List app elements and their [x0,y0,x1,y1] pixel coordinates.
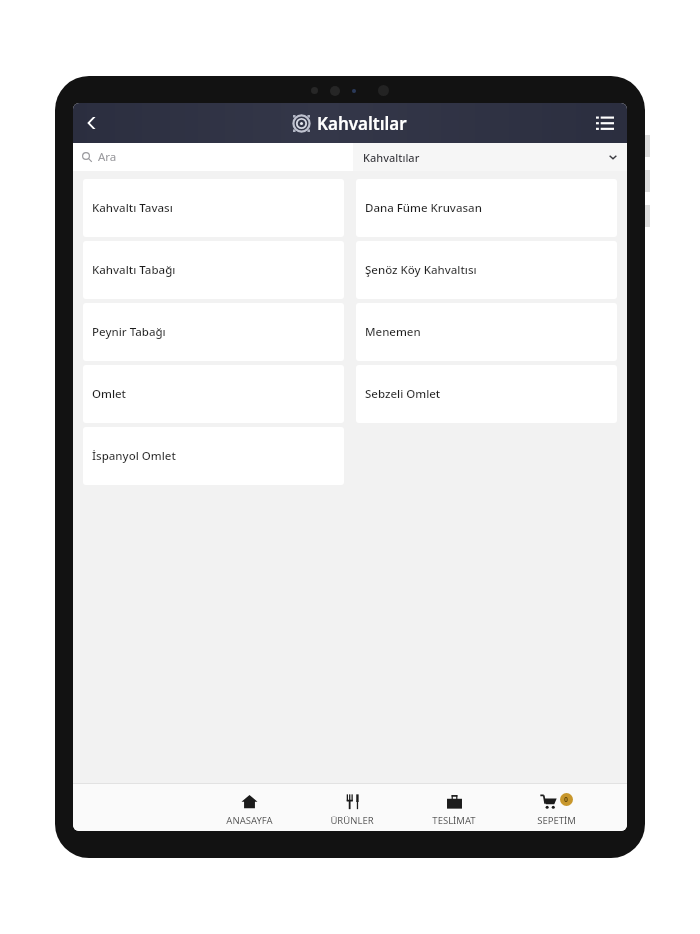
button[interactable]: Back [77,107,109,139]
staticText: Ara [98,149,117,165]
staticText: Şenöz Köy Kahvaltısı [365,262,477,278]
button[interactable]: Kahvaltı Tavası [83,179,344,237]
staticText: Kahvaltılar [363,150,420,165]
staticText: SEPETİM [537,814,576,827]
button[interactable]: Menu [589,107,621,139]
staticText: Dana Füme Kruvasan [365,200,482,216]
button[interactable]: Sebzeli Omlet [356,365,617,423]
button[interactable]: TESLİMAT [403,787,505,831]
button[interactable]: Omlet [83,365,344,423]
staticText: Peynir Tabağı [92,324,166,340]
staticText: İspanyol Omlet [92,448,176,464]
button[interactable]: Kahvaltı Tabağı [83,241,344,299]
staticText: Kahvaltı Tabağı [92,262,176,278]
staticText: TESLİMAT [432,814,476,827]
staticText: Omlet [92,386,127,402]
button[interactable]: ANASAYFA [198,787,301,831]
staticText: Menemen [365,324,421,340]
button[interactable]: 0 [505,787,607,831]
staticText: ÜRÜNLER [330,814,374,827]
staticText: Kahvaltı Tavası [92,200,173,216]
button[interactable]: Peynir Tabağı [83,303,344,361]
button[interactable]: Menemen [356,303,617,361]
button[interactable]: İspanyol Omlet [83,427,344,485]
staticText: Kahvaltılar [317,112,407,135]
button[interactable]: ÜRÜNLER [301,787,403,831]
staticText: Sebzeli Omlet [365,386,441,402]
button[interactable]: Kahvaltılar [353,143,627,171]
staticText: 0 [564,795,569,805]
button[interactable]: Ara [73,143,353,171]
staticText: ANASAYFA [226,814,273,827]
button[interactable]: Şenöz Köy Kahvaltısı [356,241,617,299]
button[interactable]: Dana Füme Kruvasan [356,179,617,237]
